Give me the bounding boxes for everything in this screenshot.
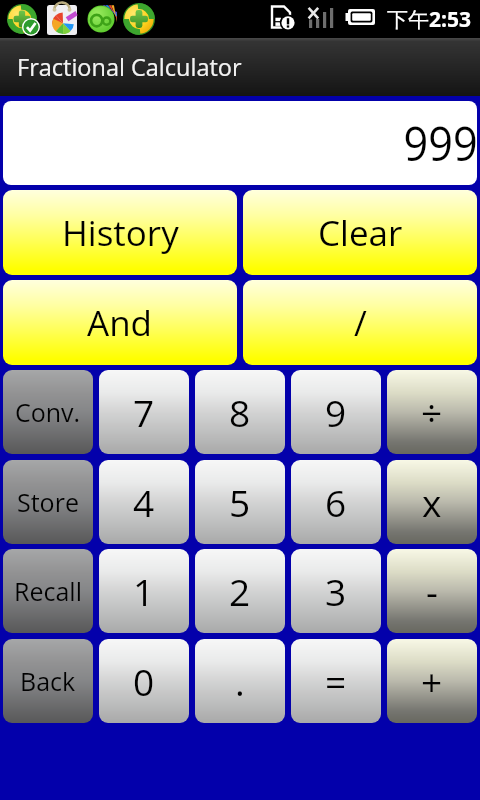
- button[interactable]: Back: [3, 639, 93, 723]
- staticText: x: [422, 477, 442, 527]
- staticText: Conv.: [15, 395, 81, 429]
- staticText: .: [235, 656, 245, 706]
- button[interactable]: 2: [195, 549, 285, 633]
- button[interactable]: History: [3, 190, 237, 275]
- button[interactable]: 6: [291, 460, 381, 544]
- staticText: =: [325, 656, 347, 706]
- staticText: +: [421, 656, 443, 706]
- staticText: 2: [229, 566, 251, 616]
- staticText: 4: [133, 477, 155, 527]
- staticText: Recall: [14, 574, 82, 608]
- button[interactable]: 5: [195, 460, 285, 544]
- staticText: 999: [403, 111, 477, 175]
- staticText: 3: [325, 566, 347, 616]
- button[interactable]: 8: [195, 370, 285, 454]
- staticText: 0: [133, 656, 155, 706]
- staticText: Clear: [318, 209, 403, 257]
- button[interactable]: ÷: [387, 370, 477, 454]
- button[interactable]: .: [195, 639, 285, 723]
- button[interactable]: Recall: [3, 549, 93, 633]
- button[interactable]: Store: [3, 460, 93, 544]
- staticText: 8: [229, 387, 251, 437]
- button[interactable]: 1: [99, 549, 189, 633]
- button[interactable]: Conv.: [3, 370, 93, 454]
- button[interactable]: 7: [99, 370, 189, 454]
- button[interactable]: And: [3, 280, 237, 365]
- staticText: 下午2:53: [387, 5, 472, 34]
- staticText: ÷: [421, 387, 443, 437]
- button[interactable]: /: [243, 280, 477, 365]
- staticText: -: [426, 566, 438, 616]
- staticText: Back: [20, 664, 76, 698]
- staticText: History: [62, 209, 179, 257]
- staticText: And: [87, 299, 153, 347]
- button[interactable]: Clear: [243, 190, 477, 275]
- button[interactable]: +: [387, 639, 477, 723]
- button[interactable]: 3: [291, 549, 381, 633]
- staticText: 6: [325, 477, 347, 527]
- button[interactable]: 4: [99, 460, 189, 544]
- staticText: 9: [325, 387, 347, 437]
- button[interactable]: =: [291, 639, 381, 723]
- staticText: 1: [133, 566, 155, 616]
- staticText: 7: [133, 387, 155, 437]
- button[interactable]: x: [387, 460, 477, 544]
- staticText: /: [354, 299, 367, 347]
- staticText: Store: [17, 485, 79, 519]
- button[interactable]: -: [387, 549, 477, 633]
- button[interactable]: 0: [99, 639, 189, 723]
- button[interactable]: 9: [291, 370, 381, 454]
- staticText: 5: [229, 477, 251, 527]
- staticText: Fractional Calculator: [17, 51, 242, 83]
